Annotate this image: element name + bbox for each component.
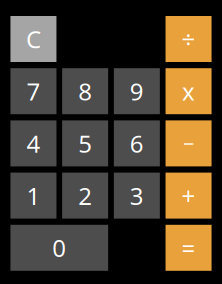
staticText: 9 [130, 75, 144, 107]
button[interactable]: ÷ [166, 16, 212, 62]
button[interactable]: 9 [114, 68, 160, 114]
staticText: x [182, 75, 195, 107]
staticText: = [182, 232, 196, 264]
staticText: 0 [52, 232, 66, 264]
staticText: ÷ [182, 23, 196, 55]
staticText: − [183, 130, 194, 157]
button[interactable]: 1 [10, 173, 56, 219]
button[interactable]: 4 [10, 120, 56, 166]
button[interactable]: = [166, 225, 212, 271]
staticText: 5 [78, 127, 92, 159]
button[interactable]: 0 [10, 225, 108, 271]
button[interactable]: + [166, 173, 212, 219]
button[interactable]: x [166, 68, 212, 114]
button[interactable]: 3 [114, 173, 160, 219]
staticText: 3 [130, 180, 144, 212]
staticText: 6 [130, 127, 144, 159]
staticText: C [26, 23, 41, 55]
button[interactable]: 8 [62, 68, 108, 114]
staticText: + [182, 180, 196, 212]
staticText: 8 [78, 75, 92, 107]
button[interactable]: 7 [10, 68, 56, 114]
button[interactable]: − [166, 120, 212, 166]
staticText: 4 [26, 127, 40, 159]
button[interactable]: C [10, 16, 56, 62]
button[interactable]: 2 [62, 173, 108, 219]
staticText: 2 [78, 180, 92, 212]
staticText: 7 [26, 75, 40, 107]
button[interactable]: 5 [62, 120, 108, 166]
button[interactable]: 6 [114, 120, 160, 166]
staticText: 1 [26, 180, 40, 212]
